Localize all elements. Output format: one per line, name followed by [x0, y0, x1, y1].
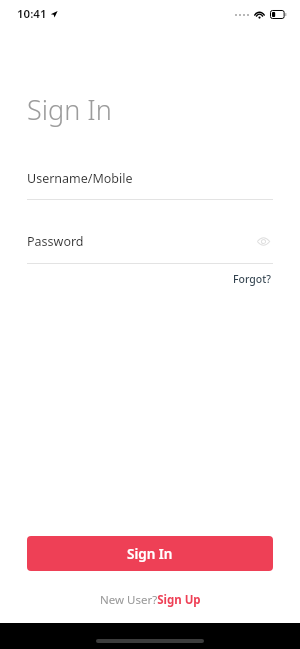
staticText: 10:41	[17, 6, 47, 22]
button[interactable]: Forgot?	[231, 270, 273, 288]
staticText: Username/Mobile	[27, 170, 273, 187]
staticText: Sign In	[27, 91, 112, 128]
staticText: Password	[27, 233, 253, 250]
button[interactable]: Show password	[253, 231, 273, 251]
button[interactable]: Sign In	[27, 536, 273, 571]
button[interactable]: New User?Sign Up	[94, 590, 207, 610]
staticText: New User?Sign Up	[100, 592, 201, 608]
staticText: Sign In	[127, 545, 173, 563]
staticText: Forgot?	[233, 272, 271, 286]
